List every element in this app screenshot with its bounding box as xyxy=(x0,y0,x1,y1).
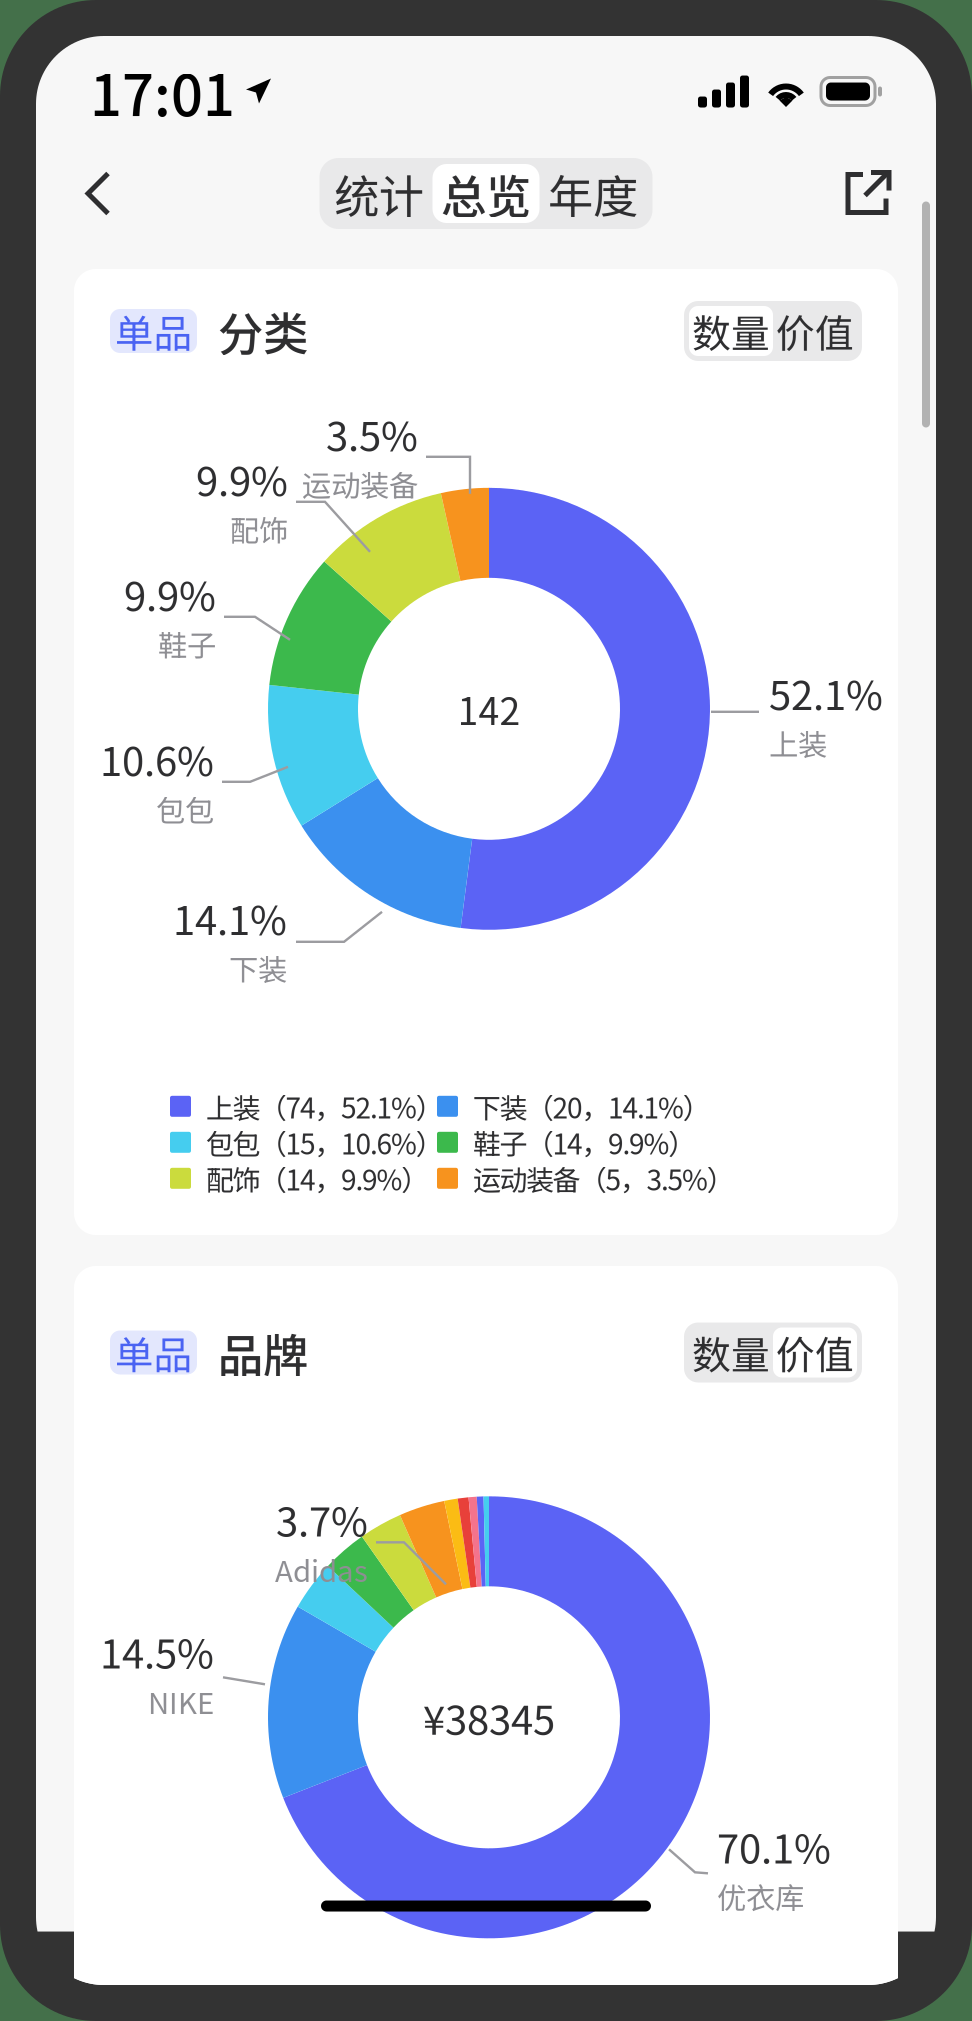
staticText: 分类 xyxy=(218,298,308,364)
staticText: 数量 xyxy=(692,1324,770,1380)
staticText: 年度 xyxy=(548,161,638,226)
staticText: 配饰（14，9.9%） xyxy=(206,1158,429,1198)
staticText: 52.1% xyxy=(769,664,883,721)
button[interactable]: Share xyxy=(838,167,896,219)
staticText: 142 xyxy=(457,682,520,736)
staticText: 统计 xyxy=(334,161,424,226)
staticText: 单品 xyxy=(114,1324,192,1380)
button[interactable]: 总览 xyxy=(432,164,539,223)
staticText: 总览 xyxy=(441,161,531,226)
staticText: 优衣库 xyxy=(717,1875,804,1917)
staticText: NIKE xyxy=(148,1680,214,1722)
staticText: 14.1% xyxy=(173,889,287,946)
staticText: 14.5% xyxy=(100,1622,214,1680)
staticText: 上装 xyxy=(769,721,827,764)
button[interactable]: 年度 xyxy=(539,164,646,223)
staticText: ¥38345 xyxy=(423,1688,555,1746)
staticText: 品牌 xyxy=(218,1320,308,1385)
staticText: 上装（74，52.1%） xyxy=(206,1086,443,1126)
button[interactable]: Back xyxy=(76,163,126,223)
button[interactable]: 统计 xyxy=(325,164,432,223)
staticText: 价值 xyxy=(776,303,854,359)
staticText: 单品 xyxy=(114,303,192,359)
staticText: 17:01 xyxy=(90,51,235,132)
staticText: Adidas xyxy=(275,1548,368,1590)
staticText: 价值 xyxy=(776,1324,854,1380)
staticText: 下装 xyxy=(229,946,287,989)
staticText: 配饰 xyxy=(230,507,288,550)
staticText: 70.1% xyxy=(717,1817,831,1875)
staticText: 包包（15，10.6%） xyxy=(206,1122,443,1162)
staticText: 运动装备（5，3.5%） xyxy=(473,1158,734,1198)
button[interactable]: 价值 xyxy=(773,306,857,356)
staticText: 下装（20，14.1%） xyxy=(473,1086,710,1126)
staticText: 9.9% xyxy=(124,565,216,622)
button[interactable]: 数量 xyxy=(689,1327,773,1377)
button[interactable]: 价值 xyxy=(773,1327,857,1377)
staticText: 运动装备 xyxy=(302,462,418,505)
staticText: 包包 xyxy=(156,787,214,830)
staticText: 鞋子（14，9.9%） xyxy=(473,1122,696,1162)
staticText: 9.9% xyxy=(196,450,288,507)
staticText: 鞋子 xyxy=(158,622,216,665)
staticText: 3.5% xyxy=(326,405,418,462)
staticText: 10.6% xyxy=(100,730,214,787)
staticText: 3.7% xyxy=(276,1490,368,1548)
staticText: 数量 xyxy=(692,303,770,359)
button[interactable]: 数量 xyxy=(689,306,773,356)
